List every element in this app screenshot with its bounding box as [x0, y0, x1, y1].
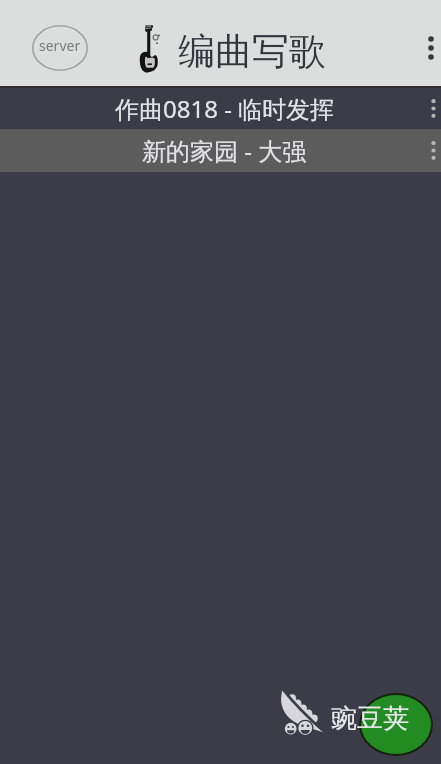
button[interactable]: Add new song — [359, 693, 433, 756]
staticText: 新的家园 - 大强 — [142, 134, 307, 167]
button[interactable]: Song options — [425, 129, 441, 172]
staticText: server — [39, 36, 81, 55]
button[interactable]: 新的家园 - 大强 — [0, 129, 441, 172]
staticText: 编曲写歌 — [178, 28, 326, 75]
staticText: 豌豆荚 — [331, 702, 409, 735]
staticText: 作曲0818 - 临时发挥 — [115, 92, 335, 125]
button[interactable]: More options — [420, 5, 441, 91]
button[interactable]: Song options — [425, 88, 441, 129]
button[interactable]: server — [32, 25, 88, 71]
button[interactable]: 作曲0818 - 临时发挥 — [0, 88, 441, 129]
